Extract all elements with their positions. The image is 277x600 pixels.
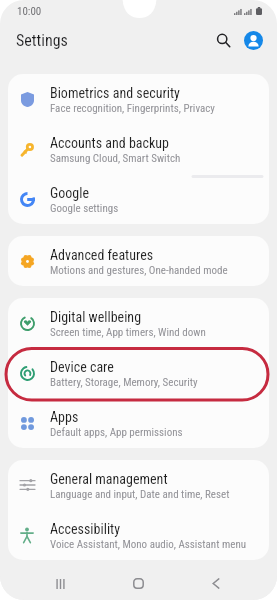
staticText: Samsung Cloud, Smart Switch	[50, 152, 181, 165]
staticText: Default apps, App permissions	[50, 426, 183, 439]
staticText: Voice Assistant, Mono audio, Assistant m…	[50, 538, 247, 551]
staticText: General management	[50, 471, 168, 487]
button[interactable]: Home	[99, 567, 177, 600]
staticText: Face recognition, Fingerprints, Privacy	[50, 102, 215, 115]
button[interactable]: Accessibility	[8, 510, 269, 560]
staticText: Biometrics and security	[50, 85, 180, 101]
button[interactable]: Back	[177, 567, 255, 600]
staticText: Device care	[50, 359, 114, 375]
button[interactable]: Recent apps	[22, 567, 99, 600]
staticText: 10:00	[17, 5, 42, 18]
button[interactable]: Apps	[8, 398, 269, 448]
button[interactable]: Digital wellbeing	[8, 298, 269, 348]
button[interactable]: Account	[244, 31, 263, 50]
staticText: Accessibility	[50, 521, 121, 537]
button[interactable]: Accounts and backup	[8, 124, 269, 174]
staticText: Apps	[50, 409, 79, 425]
button[interactable]: Search	[210, 27, 236, 53]
button[interactable]: Advanced features	[8, 236, 269, 286]
staticText: Motions and gestures, One-handed mode	[50, 264, 228, 277]
button[interactable]: Device care	[8, 348, 269, 398]
staticText: Google	[50, 185, 90, 201]
staticText: Advanced features	[50, 247, 154, 263]
button[interactable]: Google	[8, 174, 269, 224]
staticText: Digital wellbeing	[50, 309, 142, 325]
staticText: Screen time, App timers, Wind down	[50, 326, 206, 339]
staticText: Accounts and backup	[50, 135, 170, 151]
button[interactable]: General management	[8, 460, 269, 510]
staticText: Language and input, Date and time, Reset	[50, 488, 230, 501]
staticText: Google settings	[50, 202, 119, 215]
staticText: Battery, Storage, Memory, Security	[50, 376, 198, 389]
button[interactable]: Biometrics and security	[8, 74, 269, 124]
staticText: Settings	[16, 31, 68, 50]
